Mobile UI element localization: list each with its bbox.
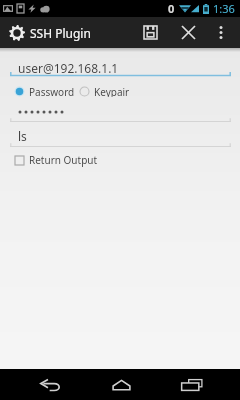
staticText: 0 xyxy=(168,1,175,16)
staticText: Keypair xyxy=(94,85,130,97)
staticText: 1:36 xyxy=(213,1,235,16)
button[interactable]: Back xyxy=(24,369,76,400)
staticText: ls xyxy=(18,128,27,144)
staticText: SSH Plugin xyxy=(30,25,91,41)
button[interactable]: Return Output xyxy=(15,153,98,167)
button[interactable]: Close xyxy=(171,17,205,48)
staticText: user@192.168.1.1 xyxy=(18,60,119,76)
other: App icon xyxy=(9,25,25,41)
staticText: Password xyxy=(29,85,75,97)
button[interactable]: Home xyxy=(95,369,147,400)
staticText: Return Output xyxy=(29,153,98,167)
button[interactable]: More options xyxy=(207,17,235,48)
button[interactable]: Recents xyxy=(166,369,218,400)
button[interactable]: Save xyxy=(133,17,167,48)
button[interactable]: Keypair xyxy=(79,85,130,97)
button[interactable]: Password xyxy=(14,85,75,97)
